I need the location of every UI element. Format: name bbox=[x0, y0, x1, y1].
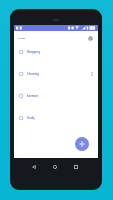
button[interactable]: Add bbox=[75, 137, 89, 151]
staticText: Exercise bbox=[27, 94, 39, 98]
button[interactable]: Home bbox=[50, 162, 59, 171]
staticText: Shopping bbox=[27, 50, 40, 54]
button[interactable]: Study bbox=[14, 107, 98, 129]
button[interactable]: Recents bbox=[71, 162, 80, 171]
staticText: Cleaning bbox=[27, 72, 39, 76]
staticText: To-Dos bbox=[18, 37, 26, 40]
button[interactable]: Exercise bbox=[14, 85, 98, 107]
button[interactable]: Settings bbox=[85, 33, 96, 43]
button[interactable]: Shopping bbox=[14, 41, 98, 63]
button[interactable]: Back bbox=[29, 162, 38, 171]
button[interactable]: Cleaning bbox=[14, 63, 98, 85]
staticText: Study bbox=[27, 116, 35, 120]
